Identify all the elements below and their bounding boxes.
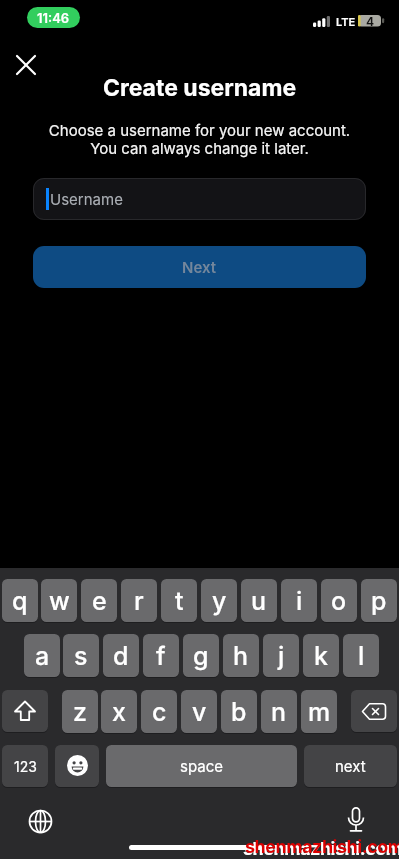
staticText: Username bbox=[50, 190, 123, 208]
staticText: 4 bbox=[366, 14, 375, 29]
staticText: 123 bbox=[14, 758, 37, 775]
button[interactable]: i bbox=[281, 579, 317, 622]
button[interactable]: a bbox=[24, 634, 60, 677]
staticText: x bbox=[112, 697, 126, 727]
button[interactable]: k bbox=[303, 634, 339, 677]
button[interactable]: b bbox=[221, 690, 257, 733]
staticText: s bbox=[74, 641, 88, 671]
button[interactable]: g bbox=[183, 634, 219, 677]
staticText: w bbox=[49, 586, 70, 616]
staticText: m bbox=[308, 697, 331, 727]
staticText: k bbox=[314, 641, 328, 671]
button[interactable]: u bbox=[241, 579, 277, 622]
staticText: n bbox=[271, 697, 287, 727]
button[interactable]: next bbox=[304, 745, 397, 787]
button[interactable]: r bbox=[121, 579, 157, 622]
button[interactable]: d bbox=[103, 634, 139, 677]
staticText: e bbox=[92, 586, 107, 616]
staticText: shenmazhishi.com bbox=[243, 838, 399, 859]
button[interactable]: o bbox=[321, 579, 357, 622]
staticText: h bbox=[233, 641, 249, 671]
button[interactable]: c bbox=[141, 690, 177, 733]
button[interactable]: p bbox=[361, 579, 397, 622]
button[interactable]: q bbox=[2, 579, 38, 622]
button[interactable]: 11:46 bbox=[27, 7, 80, 28]
staticText: c bbox=[152, 697, 167, 727]
button[interactable]: h bbox=[223, 634, 259, 677]
staticText: z bbox=[73, 697, 87, 727]
staticText: d bbox=[113, 641, 129, 671]
button[interactable]: space bbox=[106, 745, 297, 787]
button[interactable]: x bbox=[101, 690, 137, 733]
staticText: r bbox=[134, 586, 144, 616]
button[interactable]: s bbox=[63, 634, 99, 677]
button[interactable]: n bbox=[261, 690, 297, 733]
button[interactable]: f bbox=[143, 634, 179, 677]
staticText: Create username bbox=[0, 74, 399, 102]
staticText: p bbox=[371, 586, 387, 616]
button[interactable]: w bbox=[41, 579, 77, 622]
button[interactable]: v bbox=[181, 690, 217, 733]
button[interactable]: m bbox=[301, 690, 337, 733]
button[interactable]: l bbox=[343, 634, 379, 677]
button[interactable]: j bbox=[263, 634, 299, 677]
staticText: f bbox=[156, 641, 166, 671]
staticText: a bbox=[35, 641, 50, 671]
button[interactable]: z bbox=[62, 690, 98, 733]
staticText: Choose a username for your new account. … bbox=[0, 121, 399, 157]
staticText: g bbox=[193, 641, 209, 671]
button[interactable]: 123 bbox=[2, 745, 48, 787]
staticText: t bbox=[175, 586, 184, 616]
button[interactable]: Username bbox=[33, 178, 366, 220]
staticText: y bbox=[212, 586, 227, 616]
button[interactable] bbox=[338, 803, 374, 839]
staticText: shenmazhishi.com bbox=[245, 836, 399, 858]
staticText: o bbox=[331, 586, 347, 616]
staticText: 11:46 bbox=[37, 10, 70, 26]
staticText: next bbox=[335, 757, 366, 775]
staticText: b bbox=[231, 697, 247, 727]
staticText: v bbox=[192, 697, 207, 727]
button[interactable] bbox=[2, 690, 48, 732]
button[interactable] bbox=[351, 690, 397, 732]
staticText: Next bbox=[182, 258, 217, 276]
staticText: j bbox=[278, 641, 285, 671]
staticText: space bbox=[180, 757, 223, 775]
button[interactable] bbox=[22, 803, 58, 839]
button[interactable] bbox=[8, 47, 44, 83]
button[interactable]: t bbox=[161, 579, 197, 622]
button[interactable]: y bbox=[201, 579, 237, 622]
button[interactable]: Next bbox=[33, 246, 366, 288]
button[interactable]: e bbox=[81, 579, 117, 622]
staticText: l bbox=[358, 641, 365, 671]
staticText: q bbox=[12, 586, 28, 616]
staticText: i bbox=[296, 586, 303, 616]
staticText: u bbox=[251, 586, 267, 616]
button[interactable] bbox=[55, 745, 99, 787]
staticText: LTE bbox=[336, 15, 356, 28]
